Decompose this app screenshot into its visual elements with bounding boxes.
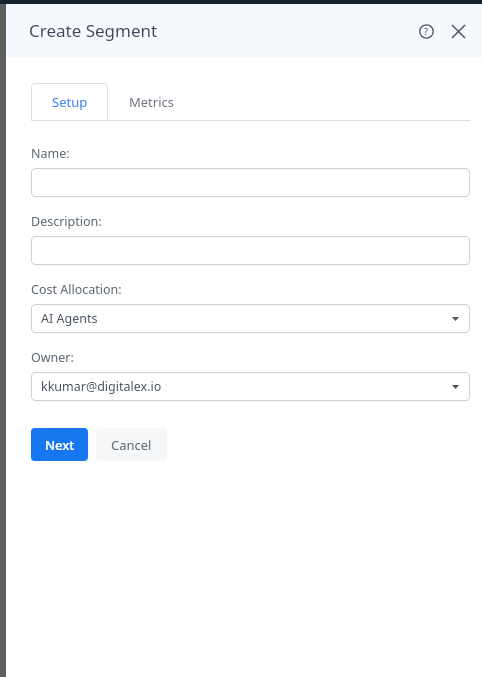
button[interactable]: Cancel [96, 428, 167, 461]
staticText: ? [424, 25, 429, 37]
button[interactable]: Metrics [108, 83, 196, 121]
button[interactable]: Setup [31, 83, 108, 121]
button[interactable] [31, 168, 470, 197]
button[interactable] [31, 236, 470, 265]
staticText: Create Segment [29, 19, 158, 42]
button[interactable]: Next [31, 428, 88, 461]
staticText: Cost Allocation: [31, 281, 122, 298]
staticText: Next [45, 436, 75, 454]
staticText: AI Agents [41, 310, 98, 327]
button[interactable]: Close [444, 17, 472, 45]
staticText: Cancel [111, 436, 152, 454]
staticText: kkumar@digitalex.io [41, 378, 162, 395]
button[interactable]: kkumar@digitalex.io [31, 372, 470, 401]
staticText: Owner: [31, 349, 74, 366]
staticText: Name: [31, 145, 70, 162]
button[interactable]: Help [412, 17, 440, 45]
button[interactable]: AI Agents [31, 304, 470, 333]
staticText: Metrics [129, 93, 175, 111]
staticText: Description: [31, 213, 102, 230]
staticText: Setup [52, 93, 88, 111]
